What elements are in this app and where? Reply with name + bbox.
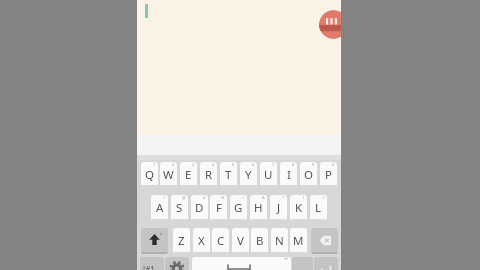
staticText: * <box>282 195 285 200</box>
button[interactable]: L <box>310 195 327 221</box>
button[interactable]: Y <box>240 162 257 187</box>
staticText: 5 <box>232 162 235 167</box>
staticText: Y <box>245 167 252 183</box>
button[interactable]: I <box>280 162 297 187</box>
staticText: R <box>205 167 213 183</box>
button[interactable]: B <box>251 228 268 254</box>
button[interactable]: O <box>300 162 317 187</box>
staticText: ^ <box>242 195 245 200</box>
staticText: @ <box>182 195 186 200</box>
staticText: ) <box>323 195 325 200</box>
staticText: # <box>203 195 206 200</box>
button[interactable]: M <box>290 228 307 254</box>
staticText: 4 <box>212 162 215 167</box>
button[interactable]: U <box>260 162 277 187</box>
button[interactable]: ”” <box>192 257 291 270</box>
button[interactable]: N <box>271 228 288 254</box>
button[interactable]: R <box>200 162 217 187</box>
button[interactable]: H <box>250 195 267 221</box>
staticText: B <box>256 233 264 249</box>
staticText: D <box>195 200 204 216</box>
staticText: A <box>156 200 164 216</box>
staticText: 2 <box>172 162 175 167</box>
staticText: V <box>237 233 244 249</box>
staticText: L <box>315 200 322 216</box>
staticText: Q <box>145 167 154 183</box>
staticText: 8 <box>292 162 295 167</box>
staticText: X <box>198 233 205 249</box>
button[interactable] <box>141 228 168 254</box>
button[interactable]: S <box>171 195 188 221</box>
button[interactable]: W <box>160 162 177 187</box>
staticText: U <box>264 167 273 183</box>
button[interactable]: A <box>151 195 168 221</box>
button[interactable]: T <box>220 162 237 187</box>
staticText: N <box>275 233 284 249</box>
staticText: I <box>287 167 291 183</box>
button[interactable]: D <box>191 195 208 221</box>
button[interactable]: Z <box>173 228 190 254</box>
button[interactable]: E <box>180 162 197 187</box>
button[interactable]: P <box>320 162 337 187</box>
staticText: M <box>293 233 304 249</box>
staticText: 7 <box>272 162 275 167</box>
button[interactable]: F <box>210 195 227 221</box>
staticText: ( <box>303 195 305 200</box>
staticText: T <box>225 167 232 183</box>
button[interactable]: X <box>193 228 210 254</box>
button[interactable]: J <box>270 195 287 221</box>
staticText: 6 <box>252 162 255 167</box>
staticText: P <box>325 167 332 183</box>
staticText: ! <box>164 195 166 200</box>
staticText: 0 <box>332 162 335 167</box>
staticText: !#1 <box>143 264 155 270</box>
staticText: C <box>217 233 225 249</box>
staticText: E <box>185 167 192 183</box>
staticText: J <box>277 200 281 216</box>
button[interactable]: V <box>232 228 249 254</box>
button[interactable] <box>137 0 341 134</box>
staticText: O <box>304 167 313 183</box>
staticText: & <box>262 195 265 200</box>
staticText: Z <box>178 233 185 249</box>
button[interactable]: C <box>212 228 229 254</box>
button[interactable] <box>311 228 338 254</box>
staticText: ”” <box>284 257 288 264</box>
button[interactable]: !#1 <box>140 257 164 270</box>
staticText: W <box>163 167 174 183</box>
staticText: H <box>254 200 263 216</box>
button[interactable] <box>314 257 338 270</box>
staticText: 9 <box>312 162 315 167</box>
button[interactable] <box>165 257 189 270</box>
staticText: F <box>216 200 222 216</box>
staticText: S <box>176 200 183 216</box>
staticText: 1 <box>153 162 156 167</box>
button[interactable]: G <box>230 195 247 221</box>
button[interactable]: Q <box>141 162 158 187</box>
staticText: 3 <box>192 162 195 167</box>
button[interactable]: K <box>290 195 307 221</box>
staticText: % <box>221 195 225 200</box>
staticText: G <box>234 200 243 216</box>
button[interactable] <box>319 10 341 39</box>
staticText: K <box>295 200 303 216</box>
